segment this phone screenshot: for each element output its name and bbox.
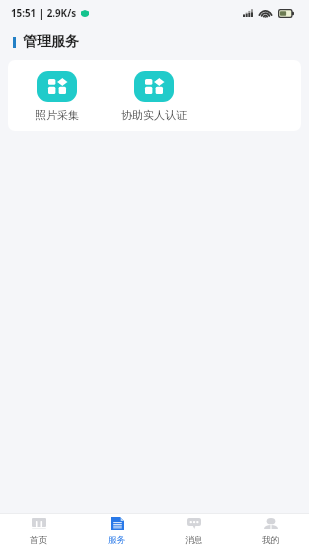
button[interactable]: 照片采集 — [8, 71, 105, 122]
staticText: 协助实人认证 — [121, 108, 187, 122]
button[interactable]: 服务 — [78, 514, 155, 550]
staticText: 我的 — [262, 535, 280, 546]
staticText: 服务 — [108, 535, 126, 546]
button[interactable]: 我的 — [232, 514, 309, 550]
button[interactable]: 消息 — [155, 514, 232, 550]
staticText: 照片采集 — [35, 108, 79, 122]
button[interactable]: 协助实人认证 — [105, 71, 203, 122]
staticText: 首页 — [30, 535, 48, 546]
staticText: 管理服务 — [23, 33, 79, 51]
button[interactable]: 首页 — [0, 514, 78, 550]
staticText: 15:51 | 2.9K/s — [11, 7, 77, 20]
staticText: 消息 — [185, 535, 203, 546]
